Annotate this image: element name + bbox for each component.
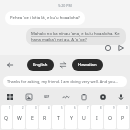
button[interactable]: U: [78, 105, 90, 129]
staticText: W: [17, 114, 22, 121]
button[interactable]: Handwriting: [59, 90, 72, 103]
button[interactable]: E: [26, 105, 38, 129]
button[interactable]: Q: [1, 105, 12, 129]
staticText: 0: [126, 106, 128, 110]
staticText: English: [33, 62, 48, 68]
button[interactable]: Swap languages: [58, 60, 68, 70]
staticText: 2: [22, 106, 24, 110]
staticText: Y: [70, 114, 73, 121]
staticText: I: [96, 114, 98, 121]
button[interactable]: Apps: [3, 90, 16, 103]
button[interactable]: Voice input: [114, 90, 127, 103]
staticText: P: [121, 114, 125, 121]
button[interactable]: I: [91, 105, 103, 129]
button[interactable]: Clipboard: [77, 90, 90, 103]
staticText: Hawaiian: [78, 62, 97, 68]
button[interactable]: GIF: [40, 90, 53, 103]
staticText: 3: [35, 106, 37, 110]
button[interactable]: Back: [3, 58, 16, 71]
button[interactable]: R: [39, 105, 51, 129]
button[interactable]: P: [117, 105, 129, 129]
staticText: E: [31, 114, 34, 121]
staticText: Pehea 'oe i kēia lā, e ku'u hoaaloha?: [10, 15, 80, 21]
button[interactable]: W: [13, 105, 25, 129]
staticText: R: [43, 114, 47, 121]
staticText: 1: [9, 106, 11, 110]
button[interactable]: English: [27, 59, 54, 71]
button[interactable]: Y: [65, 105, 77, 129]
button[interactable]: Play translation: [116, 43, 126, 53]
staticText: 9: [113, 106, 115, 110]
button[interactable]: Settings: [96, 90, 109, 103]
staticText: Q: [4, 114, 9, 121]
button[interactable]: T: [52, 105, 64, 129]
button[interactable]: Pehea 'oe i kēia lā, e ku'u hoaaloha?: [5, 11, 85, 25]
button[interactable]: Hawaiian: [72, 59, 103, 71]
button[interactable]: Copy: [103, 43, 113, 53]
staticText: Thanks for asking, my friend. I am doing…: [7, 79, 118, 84]
staticText: T: [57, 114, 60, 121]
staticText: GIF: [44, 95, 50, 99]
staticText: 5:20 PM: [58, 3, 72, 8]
staticText: O: [108, 114, 113, 121]
button[interactable]: Mahalo no ka nīnau 'ana, e ku'u hoaaloha…: [26, 28, 126, 45]
button[interactable]: Stickers: [22, 90, 35, 103]
staticText: 4: [48, 106, 50, 110]
staticText: 5: [61, 106, 63, 110]
button[interactable]: Thanks for asking, my friend. I am doing…: [3, 76, 127, 87]
staticText: 6: [74, 106, 76, 110]
staticText: 8: [100, 106, 102, 110]
button[interactable]: O: [104, 105, 116, 129]
staticText: U: [82, 114, 86, 121]
staticText: 7: [87, 106, 89, 110]
staticText: Mahalo no ka nīnau 'ana, e ku'u hoaaloha…: [31, 31, 121, 42]
